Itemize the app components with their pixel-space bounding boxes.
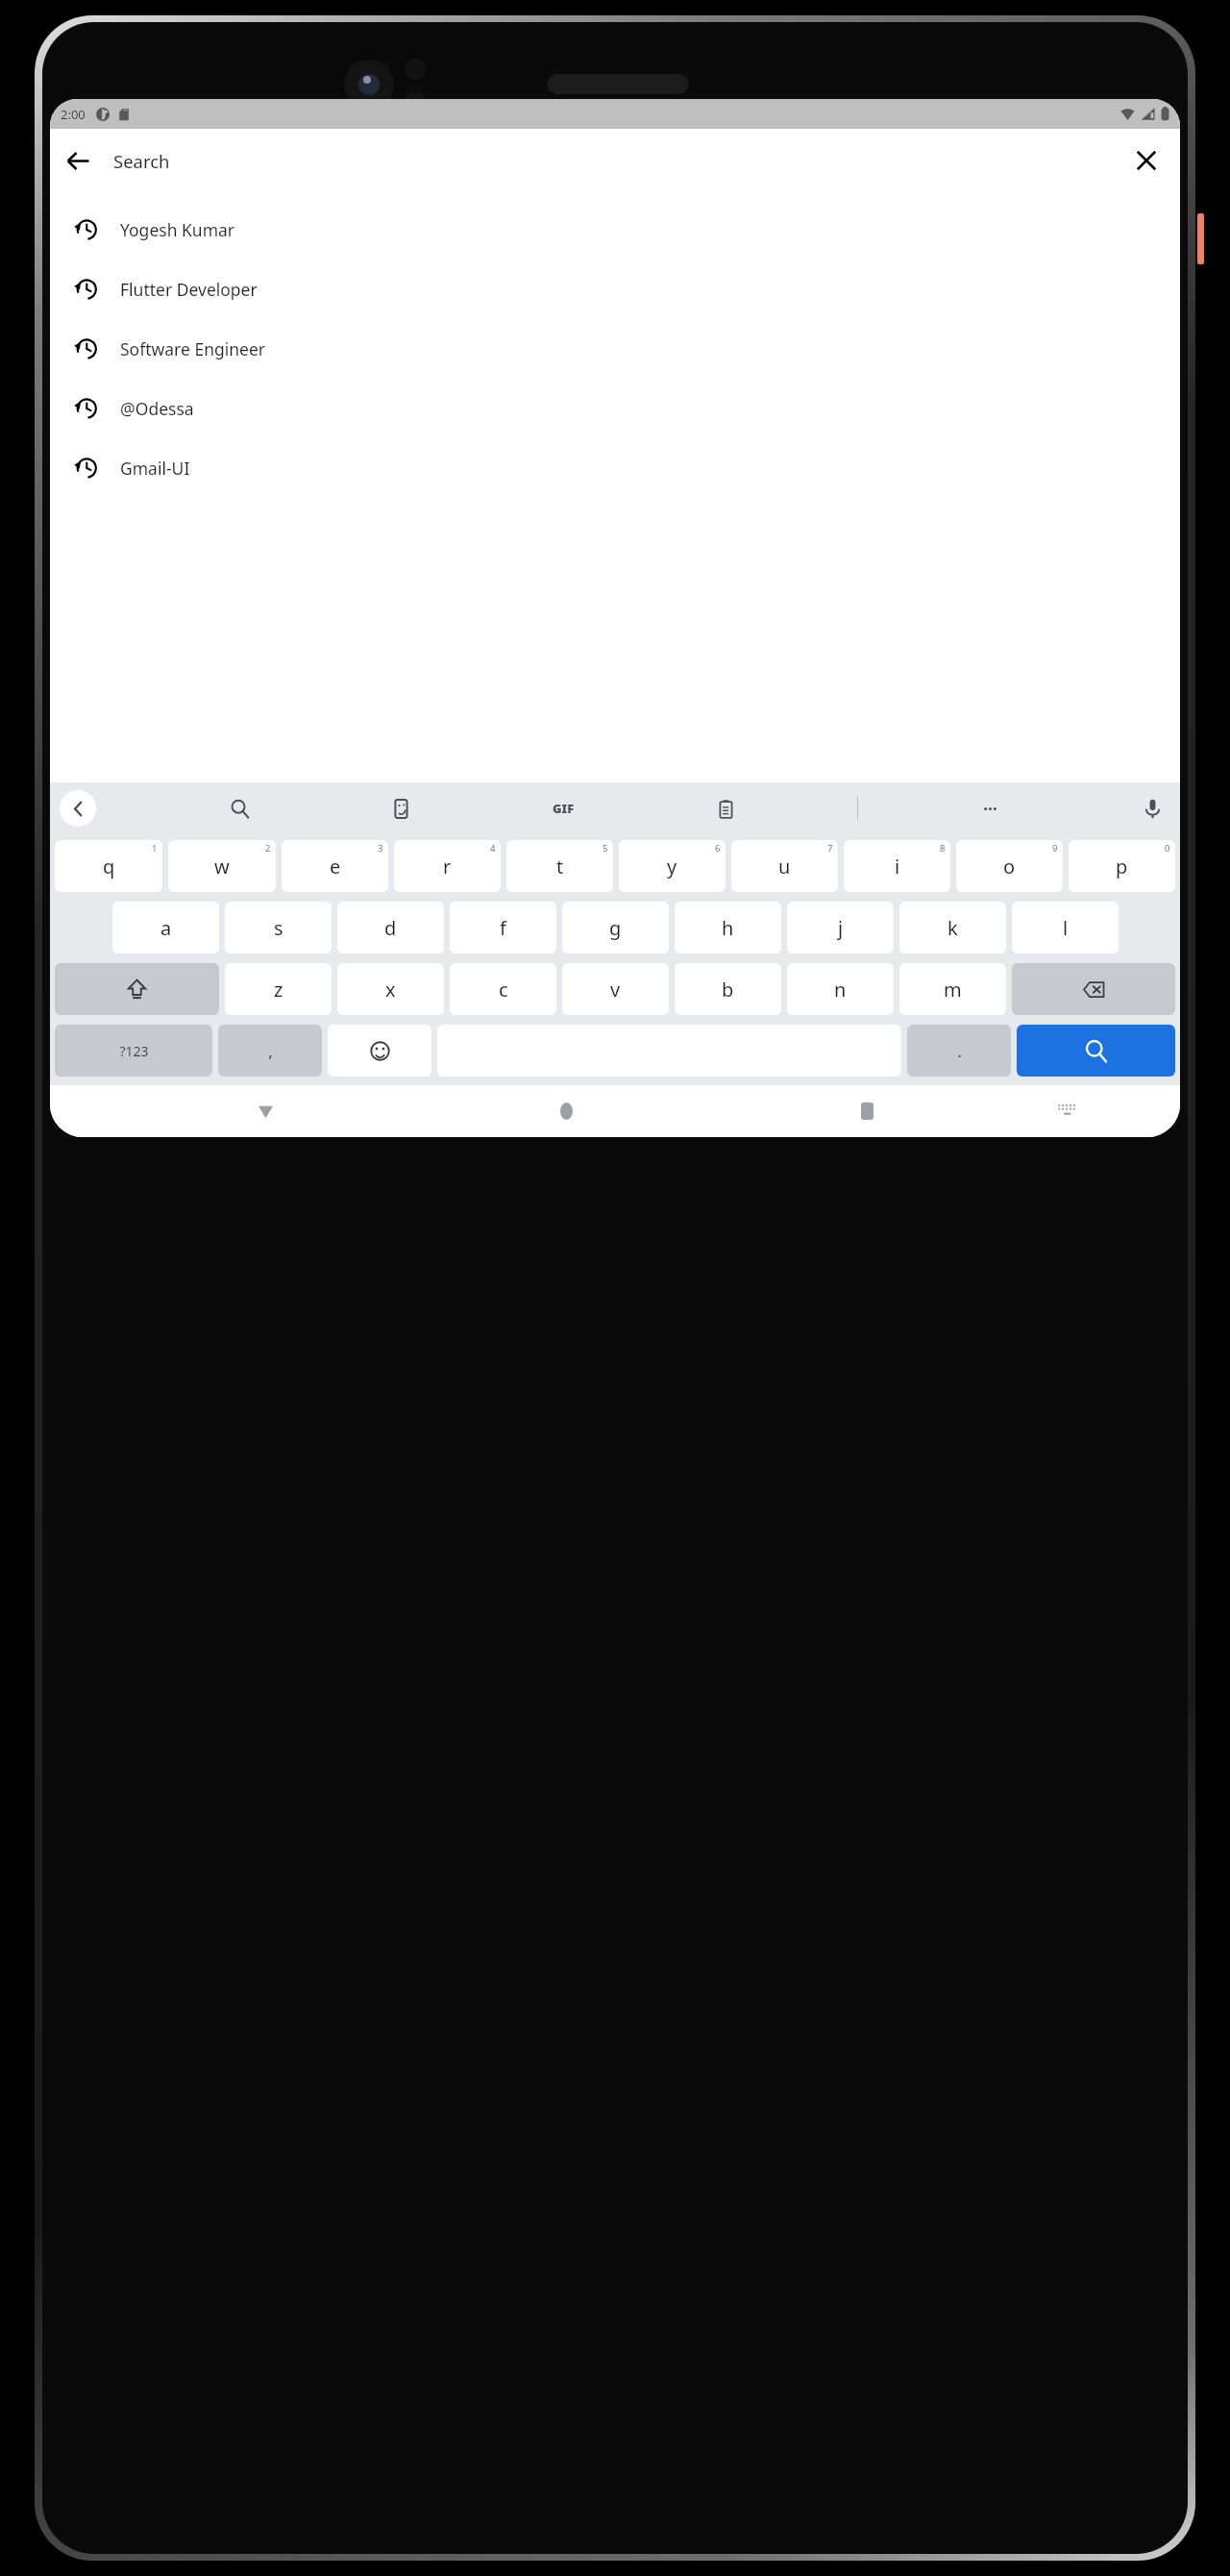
staticText: i [895, 854, 900, 879]
button[interactable]: g [562, 902, 669, 954]
button[interactable]: ?123 [55, 1025, 212, 1077]
staticText: n [834, 977, 847, 1003]
button[interactable]: h [675, 902, 781, 954]
button[interactable]: z [225, 963, 332, 1015]
button[interactable]: Search [221, 790, 258, 827]
staticText: 9 [1052, 842, 1058, 855]
staticText: Search [113, 149, 170, 173]
button[interactable]: Home [546, 1091, 586, 1131]
staticText: ?123 [119, 1042, 149, 1060]
button[interactable]: Expand toolbar [60, 790, 96, 827]
staticText: 2:00 [61, 106, 86, 123]
button[interactable]: j [787, 902, 894, 954]
staticText: s [274, 915, 283, 941]
staticText: Flutter Developer [120, 278, 258, 301]
staticText: v [610, 977, 621, 1003]
button[interactable]: Search [1017, 1025, 1175, 1077]
button[interactable]: Gmail-UI [50, 438, 1180, 498]
button[interactable]: . [907, 1025, 1011, 1077]
button[interactable]: Voice input [1134, 790, 1170, 827]
staticText: 1 [152, 842, 158, 855]
staticText: f [500, 915, 506, 941]
button[interactable]: 5 [506, 840, 613, 892]
button[interactable]: c [450, 963, 556, 1015]
button[interactable]: Software Engineer [50, 319, 1180, 379]
staticText: m [944, 977, 962, 1003]
staticText: w [214, 854, 230, 879]
button[interactable]: Stickers [382, 790, 419, 827]
button[interactable]: Shift [55, 963, 219, 1015]
staticText: b [722, 977, 734, 1003]
staticText: 2 [265, 842, 271, 855]
staticText: q [103, 854, 115, 879]
staticText: a [160, 915, 172, 941]
staticText: u [778, 854, 791, 879]
button[interactable]: 2 [168, 840, 276, 892]
button[interactable]: Switch keyboard [1046, 1091, 1087, 1131]
button[interactable]: More options [972, 790, 1008, 827]
staticText: g [609, 915, 622, 941]
button[interactable]: 4 [394, 840, 501, 892]
staticText: 6 [715, 842, 721, 855]
staticText: Gmail-UI [120, 457, 190, 480]
button[interactable]: 1 [55, 840, 162, 892]
staticText: 0 [1165, 842, 1170, 855]
staticText: z [274, 977, 283, 1003]
button[interactable]: 8 [844, 840, 950, 892]
button[interactable]: Recent apps [847, 1091, 887, 1131]
staticText: x [385, 977, 396, 1003]
button[interactable]: 9 [956, 840, 1063, 892]
staticText: 8 [940, 842, 946, 855]
staticText: k [947, 915, 958, 941]
button[interactable]: Back [245, 1091, 285, 1131]
button[interactable]: 6 [619, 840, 726, 892]
button[interactable]: d [337, 902, 444, 954]
button[interactable]: 3 [282, 840, 388, 892]
button[interactable]: m [899, 963, 1006, 1015]
staticText: e [330, 854, 341, 879]
button[interactable]: Yogesh Kumar [50, 200, 1180, 260]
button[interactable]: v [562, 963, 669, 1015]
staticText: 5 [603, 842, 608, 855]
button[interactable]: GIF [545, 790, 581, 827]
button[interactable]: k [899, 902, 1006, 954]
button[interactable]: Flutter Developer [50, 260, 1180, 319]
staticText: 7 [827, 842, 833, 855]
button[interactable]: Backspace [1012, 963, 1175, 1015]
staticText: y [667, 854, 677, 879]
staticText: 4 [490, 842, 496, 855]
staticText: j [838, 915, 844, 941]
staticText: l [1063, 915, 1069, 941]
staticText: , [268, 1040, 273, 1062]
staticText: t [556, 854, 564, 879]
button[interactable]: 0 [1069, 840, 1175, 892]
button[interactable]: l [1012, 902, 1119, 954]
staticText: 3 [378, 842, 383, 855]
staticText: @Odessa [120, 397, 194, 420]
staticText: GIF [553, 800, 575, 817]
button[interactable]: s [225, 902, 332, 954]
button[interactable]: Clipboard [707, 790, 744, 827]
staticText: Software Engineer [120, 337, 266, 360]
staticText: p [1116, 854, 1128, 879]
button[interactable]: n [787, 963, 894, 1015]
button[interactable]: @Odessa [50, 379, 1180, 438]
button[interactable]: x [337, 963, 444, 1015]
staticText: d [384, 915, 397, 941]
button[interactable]: Clear [1119, 133, 1174, 188]
staticText: r [443, 854, 452, 879]
button[interactable]: a [112, 902, 219, 954]
button[interactable]: f [450, 902, 556, 954]
button[interactable]: b [675, 963, 781, 1015]
staticText: c [499, 977, 508, 1003]
button[interactable]: Emoji [328, 1025, 431, 1077]
staticText: h [722, 915, 734, 941]
staticText: . [957, 1040, 962, 1062]
button[interactable]: 7 [731, 840, 838, 892]
staticText: Yogesh Kumar [120, 218, 235, 241]
button[interactable]: Back [50, 133, 106, 188]
button[interactable]: , [218, 1025, 322, 1077]
staticText: o [1003, 854, 1016, 879]
